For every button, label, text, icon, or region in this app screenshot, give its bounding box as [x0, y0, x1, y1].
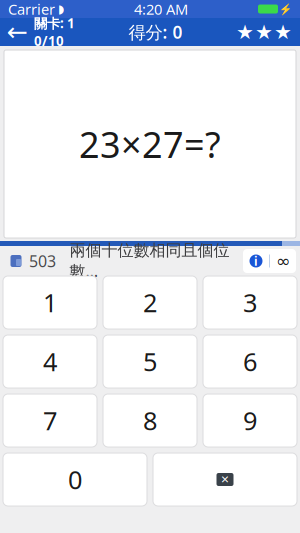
button[interactable]: 6	[203, 335, 297, 388]
button[interactable]: Stars earned	[236, 21, 300, 43]
button[interactable]: 5	[103, 335, 197, 388]
staticText: 兩個十位數相同且個位數…	[69, 240, 229, 281]
staticText: ◗	[58, 2, 64, 16]
staticText: ∞	[276, 251, 290, 271]
staticText: 5	[143, 345, 157, 378]
staticText: ★	[274, 21, 292, 43]
button[interactable]: Coins 503	[0, 250, 56, 272]
staticText: ★	[255, 21, 273, 43]
staticText: 1	[43, 286, 57, 319]
button[interactable]: 9	[203, 394, 297, 447]
staticText: Carrier	[8, 0, 55, 19]
staticText: 7	[43, 404, 57, 437]
button[interactable]: Back	[0, 18, 34, 46]
staticText: ✕	[220, 473, 229, 485]
button[interactable]: 1	[3, 276, 97, 329]
staticText: 503	[29, 250, 56, 272]
staticText: 4:20 AM	[134, 0, 188, 19]
button[interactable]: 4	[3, 335, 97, 388]
button[interactable]: 7	[3, 394, 97, 447]
staticText: 關卡: 1	[34, 14, 75, 32]
button[interactable]: 8	[103, 394, 197, 447]
staticText: 9	[243, 404, 257, 437]
button[interactable]: Hint info	[243, 249, 269, 273]
staticText: 2	[143, 286, 157, 319]
staticText: ⚡	[279, 3, 292, 15]
button[interactable]: 3	[203, 276, 297, 329]
staticText: 6	[243, 345, 257, 378]
staticText: 0/10	[34, 32, 64, 50]
button[interactable]: 2	[103, 276, 197, 329]
button[interactable]: 0	[3, 453, 147, 506]
staticText: ←	[6, 18, 27, 46]
button[interactable]: Delete	[153, 453, 297, 506]
staticText: 得分: 0	[128, 20, 182, 43]
button[interactable]: Unlimited hints	[270, 249, 296, 273]
staticText: 3	[243, 286, 257, 319]
staticText: 23×27=?	[79, 120, 221, 168]
staticText: 0	[68, 463, 82, 496]
staticText: i	[254, 253, 258, 269]
staticText: 4	[43, 345, 57, 378]
staticText: ★	[236, 21, 254, 43]
staticText: 8	[143, 404, 157, 437]
